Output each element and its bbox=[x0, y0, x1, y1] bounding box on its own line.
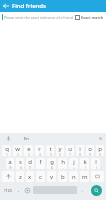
button[interactable]: h bbox=[58, 158, 67, 169]
staticText: k bbox=[83, 158, 87, 166]
button[interactable]: x bbox=[26, 171, 34, 182]
staticText: o bbox=[88, 145, 92, 153]
button[interactable]: c bbox=[36, 171, 45, 182]
staticText: x bbox=[28, 173, 32, 181]
staticText: r bbox=[38, 145, 41, 153]
button[interactable]: n bbox=[69, 171, 78, 182]
button[interactable]: r bbox=[35, 145, 44, 156]
staticText: ?123 bbox=[4, 188, 12, 193]
staticText: 2 bbox=[17, 153, 19, 156]
button[interactable]: a bbox=[6, 158, 14, 169]
staticText: , bbox=[18, 187, 20, 194]
staticText: g bbox=[50, 158, 54, 166]
staticText: - bbox=[63, 166, 64, 169]
staticText: y bbox=[58, 145, 62, 153]
button[interactable]: o bbox=[86, 145, 94, 156]
staticText: f bbox=[39, 158, 42, 166]
button[interactable]: u bbox=[66, 145, 74, 156]
button[interactable]: i bbox=[76, 145, 84, 156]
button[interactable]: p bbox=[96, 145, 104, 156]
button[interactable]: Search bbox=[91, 185, 102, 196]
staticText: w bbox=[15, 145, 20, 153]
staticText: i bbox=[79, 145, 81, 153]
staticText: d bbox=[28, 158, 32, 166]
staticText: t bbox=[49, 145, 52, 153]
button[interactable]: Back bbox=[0, 0, 12, 12]
button[interactable]: j bbox=[69, 158, 78, 169]
staticText: j bbox=[73, 158, 75, 166]
button[interactable]: d bbox=[26, 158, 34, 169]
staticText: & bbox=[51, 166, 53, 169]
button[interactable]: f bbox=[36, 158, 45, 169]
button[interactable]: y bbox=[56, 145, 64, 156]
button[interactable]: Shift bbox=[2, 171, 14, 182]
staticText: m bbox=[82, 173, 88, 181]
button[interactable]: Backspace bbox=[91, 171, 104, 182]
button[interactable]: g bbox=[47, 158, 56, 169]
button[interactable]: z bbox=[16, 171, 24, 182]
staticText: h bbox=[61, 158, 65, 166]
button[interactable]: Exact match bbox=[75, 15, 104, 20]
staticText: c bbox=[39, 173, 42, 181]
staticText: 4 bbox=[39, 153, 41, 156]
staticText: p bbox=[98, 145, 102, 153]
staticText: + bbox=[73, 166, 75, 169]
button[interactable]: Please enter the exact nickname of a fri… bbox=[2, 14, 74, 20]
button[interactable]: , bbox=[15, 183, 22, 197]
staticText: z bbox=[19, 173, 22, 181]
staticText: Exact match bbox=[81, 15, 104, 20]
staticText: v bbox=[50, 173, 54, 181]
button[interactable]: m bbox=[80, 171, 89, 182]
button[interactable]: En bbox=[16, 133, 36, 144]
staticText: @ bbox=[9, 166, 12, 169]
staticText: 3 bbox=[28, 153, 30, 156]
button[interactable]: k bbox=[80, 158, 89, 169]
button[interactable]: s bbox=[16, 158, 24, 169]
button[interactable]: v bbox=[47, 171, 56, 182]
button[interactable]: t bbox=[46, 145, 54, 156]
staticText: n bbox=[72, 173, 76, 181]
button[interactable]: q bbox=[2, 145, 11, 156]
staticText: s bbox=[19, 158, 22, 166]
staticText: Please enter the exact nickname of a fri… bbox=[4, 15, 73, 20]
button[interactable]: . bbox=[77, 183, 88, 197]
staticText: u bbox=[68, 145, 72, 153]
staticText: Find friends bbox=[12, 2, 46, 10]
button[interactable]: b bbox=[58, 171, 67, 182]
staticText: 1 bbox=[6, 153, 8, 156]
staticText: 7 bbox=[69, 153, 71, 156]
staticText: 6 bbox=[59, 153, 61, 156]
staticText: . bbox=[82, 187, 84, 194]
button[interactable]: l bbox=[91, 158, 100, 169]
button[interactable]: Voice input bbox=[0, 133, 16, 144]
button[interactable]: e bbox=[24, 145, 33, 156]
staticText: En bbox=[24, 136, 29, 142]
staticText: q bbox=[5, 145, 9, 153]
staticText: # bbox=[20, 166, 22, 169]
staticText: b bbox=[61, 173, 65, 181]
button[interactable]: Emoji bbox=[22, 183, 33, 197]
staticText: l bbox=[95, 158, 97, 166]
button[interactable]: ?123 bbox=[2, 184, 14, 196]
staticText: 5 bbox=[50, 153, 52, 156]
staticText: e bbox=[27, 145, 31, 153]
button[interactable]: w bbox=[13, 145, 22, 156]
staticText: a bbox=[8, 158, 12, 166]
button[interactable]: More options bbox=[94, 133, 106, 144]
staticText: 9 bbox=[89, 153, 91, 156]
